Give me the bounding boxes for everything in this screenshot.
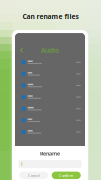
button[interactable]	[15, 126, 85, 138]
staticText: Can rename files	[22, 12, 78, 21]
staticText: Rename	[40, 150, 60, 157]
button[interactable]: Confirm	[52, 172, 81, 179]
button[interactable]: Back	[17, 44, 27, 56]
staticText: Audio	[41, 46, 59, 55]
button[interactable]	[15, 80, 85, 91]
button[interactable]	[15, 56, 85, 68]
button[interactable]	[15, 103, 85, 114]
button[interactable]	[15, 68, 85, 80]
staticText: Confirm	[59, 173, 74, 178]
staticText: Cancel	[28, 173, 40, 178]
button[interactable]	[15, 114, 85, 126]
button[interactable]	[15, 91, 85, 103]
button[interactable]: Cancel	[19, 172, 48, 179]
